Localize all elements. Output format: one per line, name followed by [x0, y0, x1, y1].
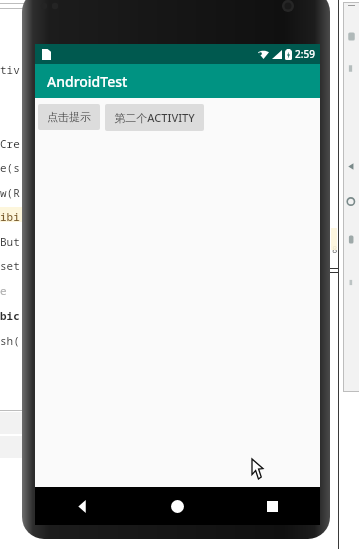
staticText: sh(	[0, 333, 20, 348]
button[interactable]: 第二个ACTIVITY	[105, 104, 204, 131]
staticText: 2:59	[295, 47, 315, 61]
staticText: AndroidTest	[47, 72, 128, 91]
staticText: tiv	[0, 62, 20, 77]
staticText: w(R	[0, 185, 20, 200]
other: Tool window icon	[345, 30, 358, 43]
staticText: But	[0, 234, 20, 249]
staticText: bic	[0, 308, 20, 323]
staticText: 8	[332, 243, 338, 255]
staticText: set	[0, 258, 20, 273]
button[interactable]: Recent apps	[225, 487, 320, 525]
staticText: 点击提示	[47, 110, 91, 124]
staticText: ibi	[0, 209, 20, 224]
button[interactable]: Back	[35, 487, 130, 525]
staticText: Cre	[0, 136, 20, 151]
button[interactable]: Home	[130, 487, 225, 525]
staticText: e	[0, 283, 7, 298]
staticText: e(s	[0, 160, 20, 175]
staticText: 第二个ACTIVITY	[114, 110, 195, 125]
button[interactable]: 点击提示	[38, 104, 100, 130]
